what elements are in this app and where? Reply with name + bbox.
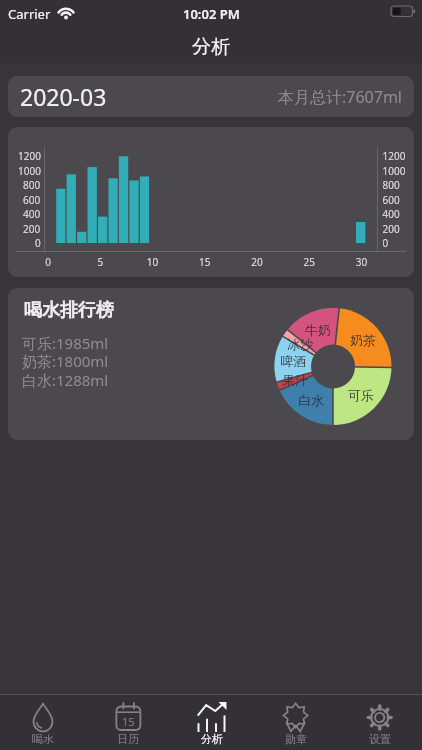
staticText: 可乐:1985ml — [22, 333, 109, 353]
staticText: 分析 — [192, 35, 230, 59]
staticText: Carrier — [8, 5, 51, 23]
staticText: 日历 — [117, 732, 139, 746]
button[interactable]: 喝水 — [0, 694, 85, 750]
staticText: 本月总计:7607ml — [278, 86, 402, 108]
staticText: 2020-03 — [20, 81, 107, 112]
staticText: 喝水 — [32, 732, 54, 746]
button[interactable]: 勋章 — [254, 694, 338, 750]
button[interactable]: 2020-03 — [8, 76, 414, 117]
button[interactable]: 设置 — [338, 694, 422, 750]
staticText: 设置 — [369, 732, 391, 746]
staticText: 喝水排行榜 — [24, 299, 114, 322]
staticText: 10:02 PM — [183, 5, 240, 23]
button[interactable]: 日历 — [85, 694, 170, 750]
button[interactable]: 分析 — [170, 694, 254, 750]
staticText: 勋章 — [285, 732, 307, 746]
staticText: 分析 — [201, 732, 223, 746]
staticText: 奶茶:1800ml — [22, 351, 109, 371]
staticText: 白水:1288ml — [22, 370, 109, 390]
